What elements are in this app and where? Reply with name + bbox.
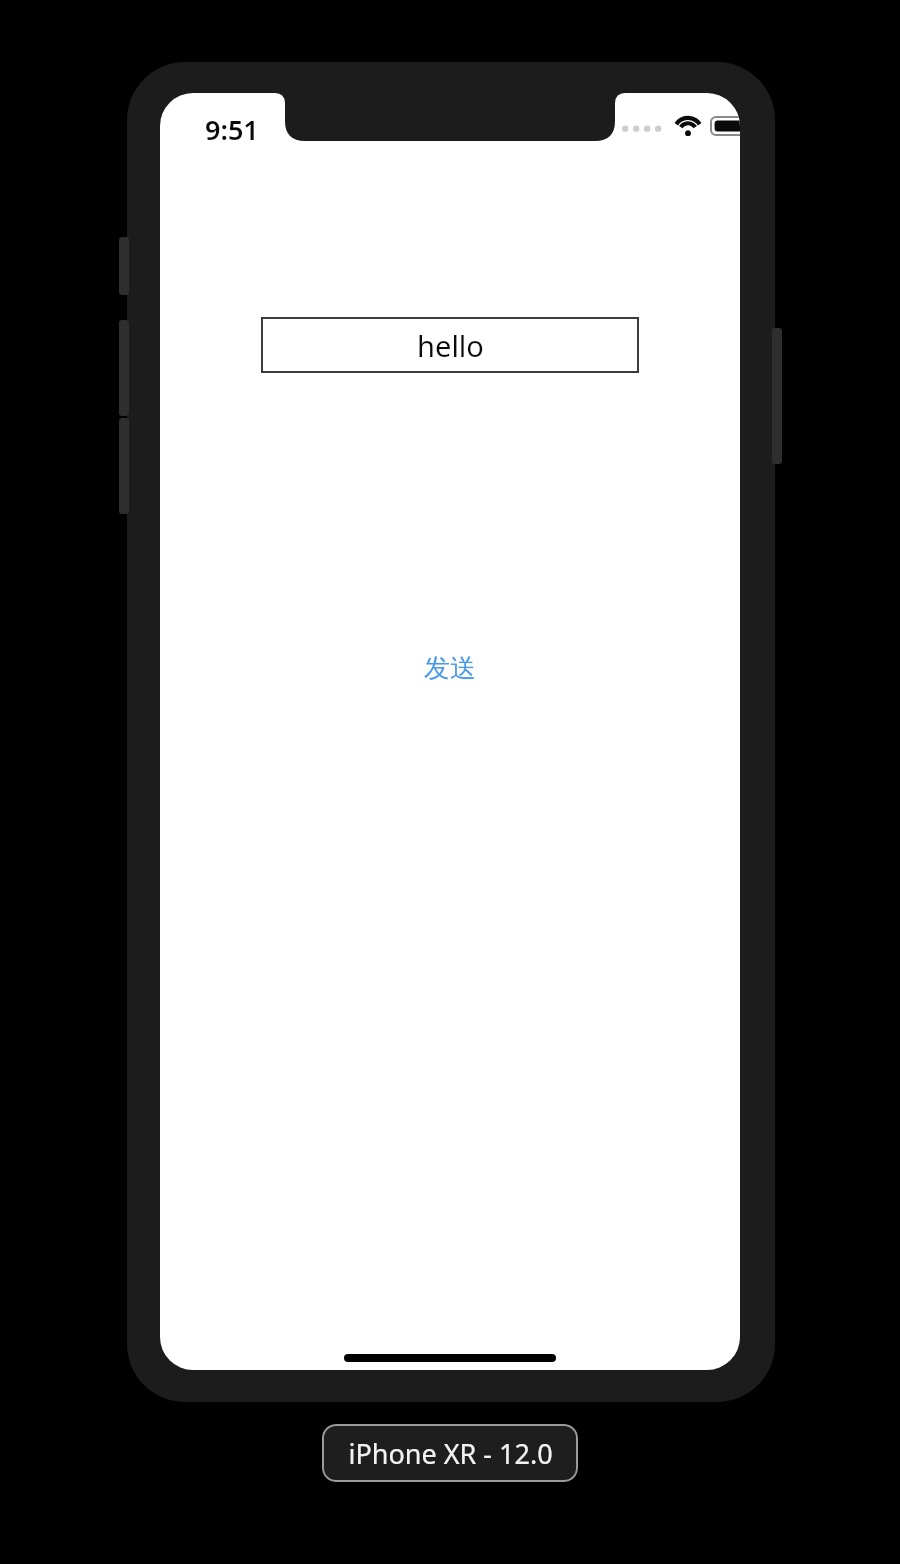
staticText: iPhone XR - 12.0 — [348, 1435, 553, 1472]
button[interactable]: hello — [261, 317, 639, 373]
button[interactable]: iPhone XR - 12.0 — [322, 1424, 578, 1482]
staticText: 9:51 — [205, 111, 259, 148]
button[interactable]: 发送 — [385, 646, 515, 690]
staticText: 发送 — [424, 652, 476, 685]
staticText: hello — [417, 326, 484, 365]
